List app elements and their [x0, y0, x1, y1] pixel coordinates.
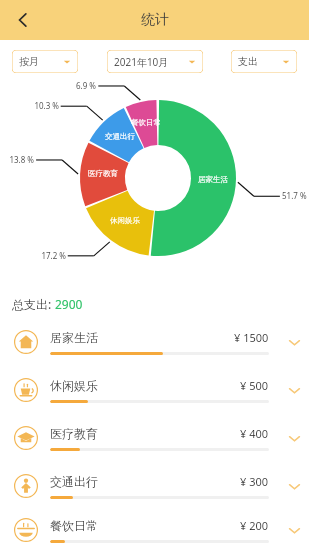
- staticText: 2021年10月: [114, 55, 169, 69]
- button[interactable]: Expand 医疗教育: [279, 414, 309, 462]
- staticText: 按月: [19, 55, 39, 68]
- button[interactable]: Expand 休闲娱乐: [279, 366, 309, 414]
- staticText: ¥ 1500: [234, 330, 269, 345]
- staticText: 13.8 %: [0, 154, 34, 165]
- button[interactable]: 支出: [231, 50, 297, 73]
- button[interactable]: 居家生活: [0, 318, 309, 366]
- button[interactable]: 餐饮日常: [0, 510, 309, 550]
- staticText: 交通出行: [98, 132, 142, 141]
- button[interactable]: Expand 餐饮日常: [279, 510, 309, 550]
- button[interactable]: Expand 交通出行: [279, 462, 309, 510]
- staticText: 居家生活: [50, 330, 98, 345]
- staticText: 休闲娱乐: [50, 378, 98, 393]
- staticText: 餐饮日常: [124, 118, 168, 127]
- staticText: 交通出行: [50, 474, 98, 489]
- button[interactable]: 交通出行: [0, 462, 309, 510]
- staticText: ¥ 200: [240, 518, 269, 533]
- staticText: 17.2 %: [32, 250, 66, 261]
- staticText: ¥ 400: [240, 426, 269, 441]
- staticText: 10.3 %: [25, 100, 59, 111]
- staticText: 医疗教育: [81, 169, 125, 178]
- staticText: 居家生活: [191, 175, 235, 184]
- button[interactable]: 按月: [12, 50, 78, 73]
- button[interactable]: Back: [6, 3, 40, 37]
- staticText: 餐饮日常: [50, 518, 98, 533]
- staticText: 休闲娱乐: [103, 216, 147, 225]
- staticText: 51.7 %: [282, 190, 309, 201]
- button[interactable]: 医疗教育: [0, 414, 309, 462]
- button[interactable]: 2021年10月: [107, 50, 203, 73]
- staticText: 2900: [55, 296, 83, 312]
- staticText: ¥ 300: [240, 474, 269, 489]
- button[interactable]: 休闲娱乐: [0, 366, 309, 414]
- staticText: 6.9 %: [62, 80, 96, 91]
- staticText: 医疗教育: [50, 426, 98, 441]
- staticText: 支出: [238, 55, 258, 68]
- staticText: 总支出:: [12, 296, 55, 312]
- staticText: ¥ 500: [240, 378, 269, 393]
- staticText: 统计: [141, 11, 169, 29]
- button[interactable]: Expand 居家生活: [279, 318, 309, 366]
